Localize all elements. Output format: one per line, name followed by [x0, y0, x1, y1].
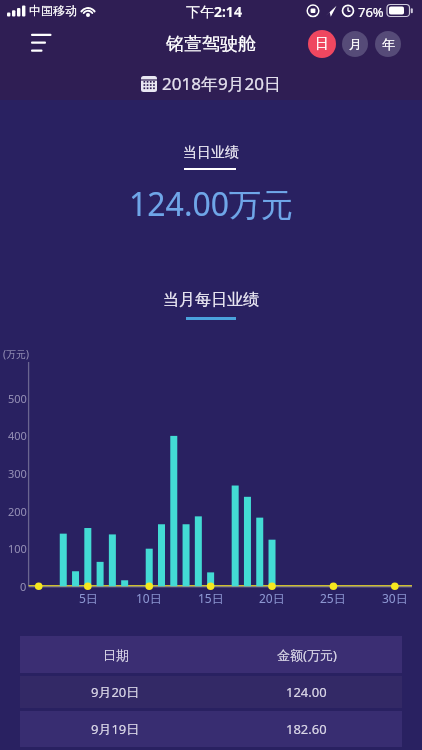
button[interactable]: 日期 [20, 636, 402, 673]
staticText: 中国移动 [29, 3, 77, 18]
staticText: 月 [349, 36, 362, 52]
staticText: 10日 [136, 590, 162, 606]
button[interactable]: 日 [308, 30, 336, 58]
button[interactable]: 9月19日 [20, 711, 402, 747]
staticText: 铭萱驾驶舱 [166, 33, 256, 56]
staticText: 124.00 [286, 683, 327, 701]
staticText: 5日 [79, 590, 98, 606]
staticText: 当日业绩 [183, 144, 239, 162]
staticText: (万元) [3, 347, 29, 361]
staticText: 日期 [103, 647, 129, 663]
staticText: 182.60 [286, 720, 327, 738]
staticText: 年 [382, 36, 395, 52]
staticText: 9月19日 [91, 720, 140, 738]
staticText: 25日 [320, 590, 346, 606]
staticText: 金额(万元) [277, 646, 337, 664]
button[interactable]: 月 [342, 31, 368, 57]
staticText: 下午2:14 [186, 2, 242, 21]
staticText: 200 [8, 504, 27, 519]
button[interactable] [24, 28, 58, 60]
staticText: 当月每日业绩 [163, 290, 259, 310]
staticText: 日 [315, 35, 329, 53]
staticText: 500 [8, 391, 27, 406]
staticText: 300 [8, 466, 27, 481]
staticText: 0 [20, 579, 27, 594]
button[interactable] [126, 72, 296, 96]
staticText: 15日 [198, 590, 224, 606]
staticText: 2018年9月20日 [162, 72, 282, 95]
staticText: 124.00万元 [129, 182, 294, 226]
staticText: 20日 [259, 590, 285, 606]
button[interactable]: 9月20日 [20, 676, 402, 708]
staticText: 100 [8, 541, 27, 556]
staticText: 9月20日 [91, 683, 140, 701]
staticText: 76% [358, 3, 384, 21]
staticText: 400 [8, 428, 27, 443]
staticText: 30日 [382, 590, 408, 606]
button[interactable]: 年 [375, 31, 401, 57]
